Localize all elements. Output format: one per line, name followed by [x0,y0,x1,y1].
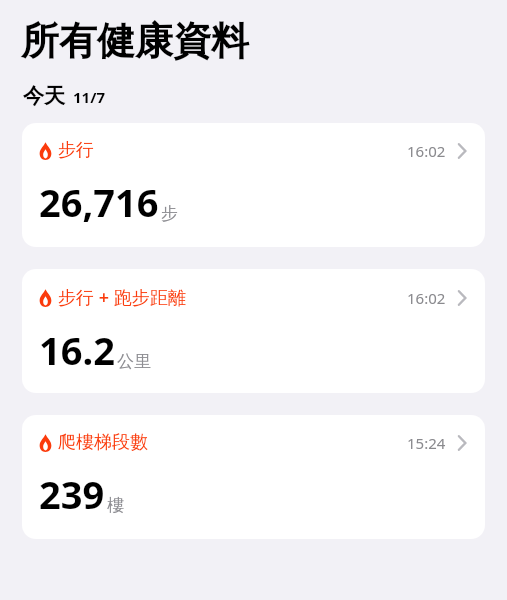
staticText: 26,716 [39,176,159,228]
staticText: 16.2 [39,324,115,376]
staticText: 樓 [107,495,124,516]
staticText: 步行 + 跑步距離 [58,285,186,310]
staticText: 步行 [58,139,94,162]
staticText: 今天 [23,83,65,109]
staticText: 15:24 [407,433,446,453]
staticText: 16:02 [407,288,446,308]
staticText: 所有健康資料 [21,17,249,65]
staticText: 16:02 [407,141,446,161]
staticText: 步 [161,203,178,224]
button[interactable]: 步行 + 跑步距離 [22,269,485,393]
button[interactable]: 步行 [22,123,485,247]
staticText: 11/7 [73,87,105,107]
button[interactable]: 爬樓梯段數 [22,415,485,539]
staticText: 公里 [117,351,151,372]
staticText: 爬樓梯段數 [58,431,148,454]
staticText: 239 [39,468,105,520]
